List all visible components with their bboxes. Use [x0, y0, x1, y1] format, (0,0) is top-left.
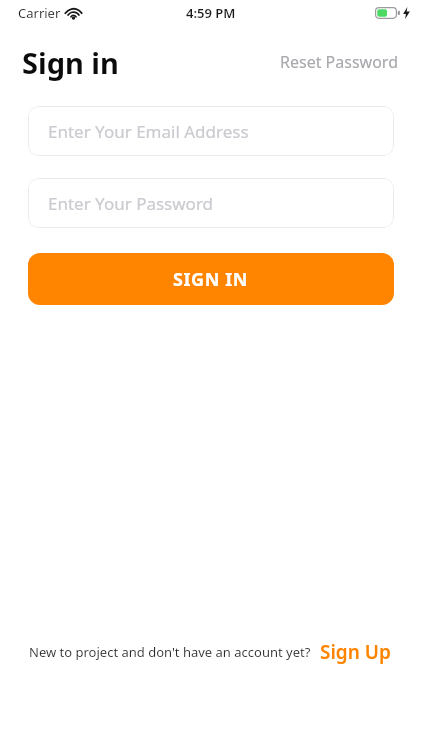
- staticText: 4:59 PM: [186, 4, 236, 22]
- button[interactable]: Sign Up: [318, 636, 393, 668]
- other: Battery charging: [375, 7, 400, 19]
- staticText: New to project and don't have an account…: [29, 643, 311, 661]
- staticText: Enter Your Password: [48, 192, 214, 215]
- button[interactable]: Enter Your Email Address: [28, 106, 394, 156]
- button[interactable]: Enter Your Password: [28, 178, 394, 228]
- button[interactable]: Reset Password: [278, 47, 400, 77]
- staticText: SIGN IN: [173, 267, 249, 292]
- staticText: Sign Up: [320, 639, 391, 665]
- staticText: Carrier: [18, 4, 61, 22]
- button[interactable]: SIGN IN: [28, 253, 394, 305]
- staticText: Sign in: [22, 43, 119, 82]
- staticText: Enter Your Email Address: [48, 120, 249, 143]
- other: Wi-Fi signal: [66, 8, 81, 19]
- staticText: Reset Password: [280, 51, 398, 73]
